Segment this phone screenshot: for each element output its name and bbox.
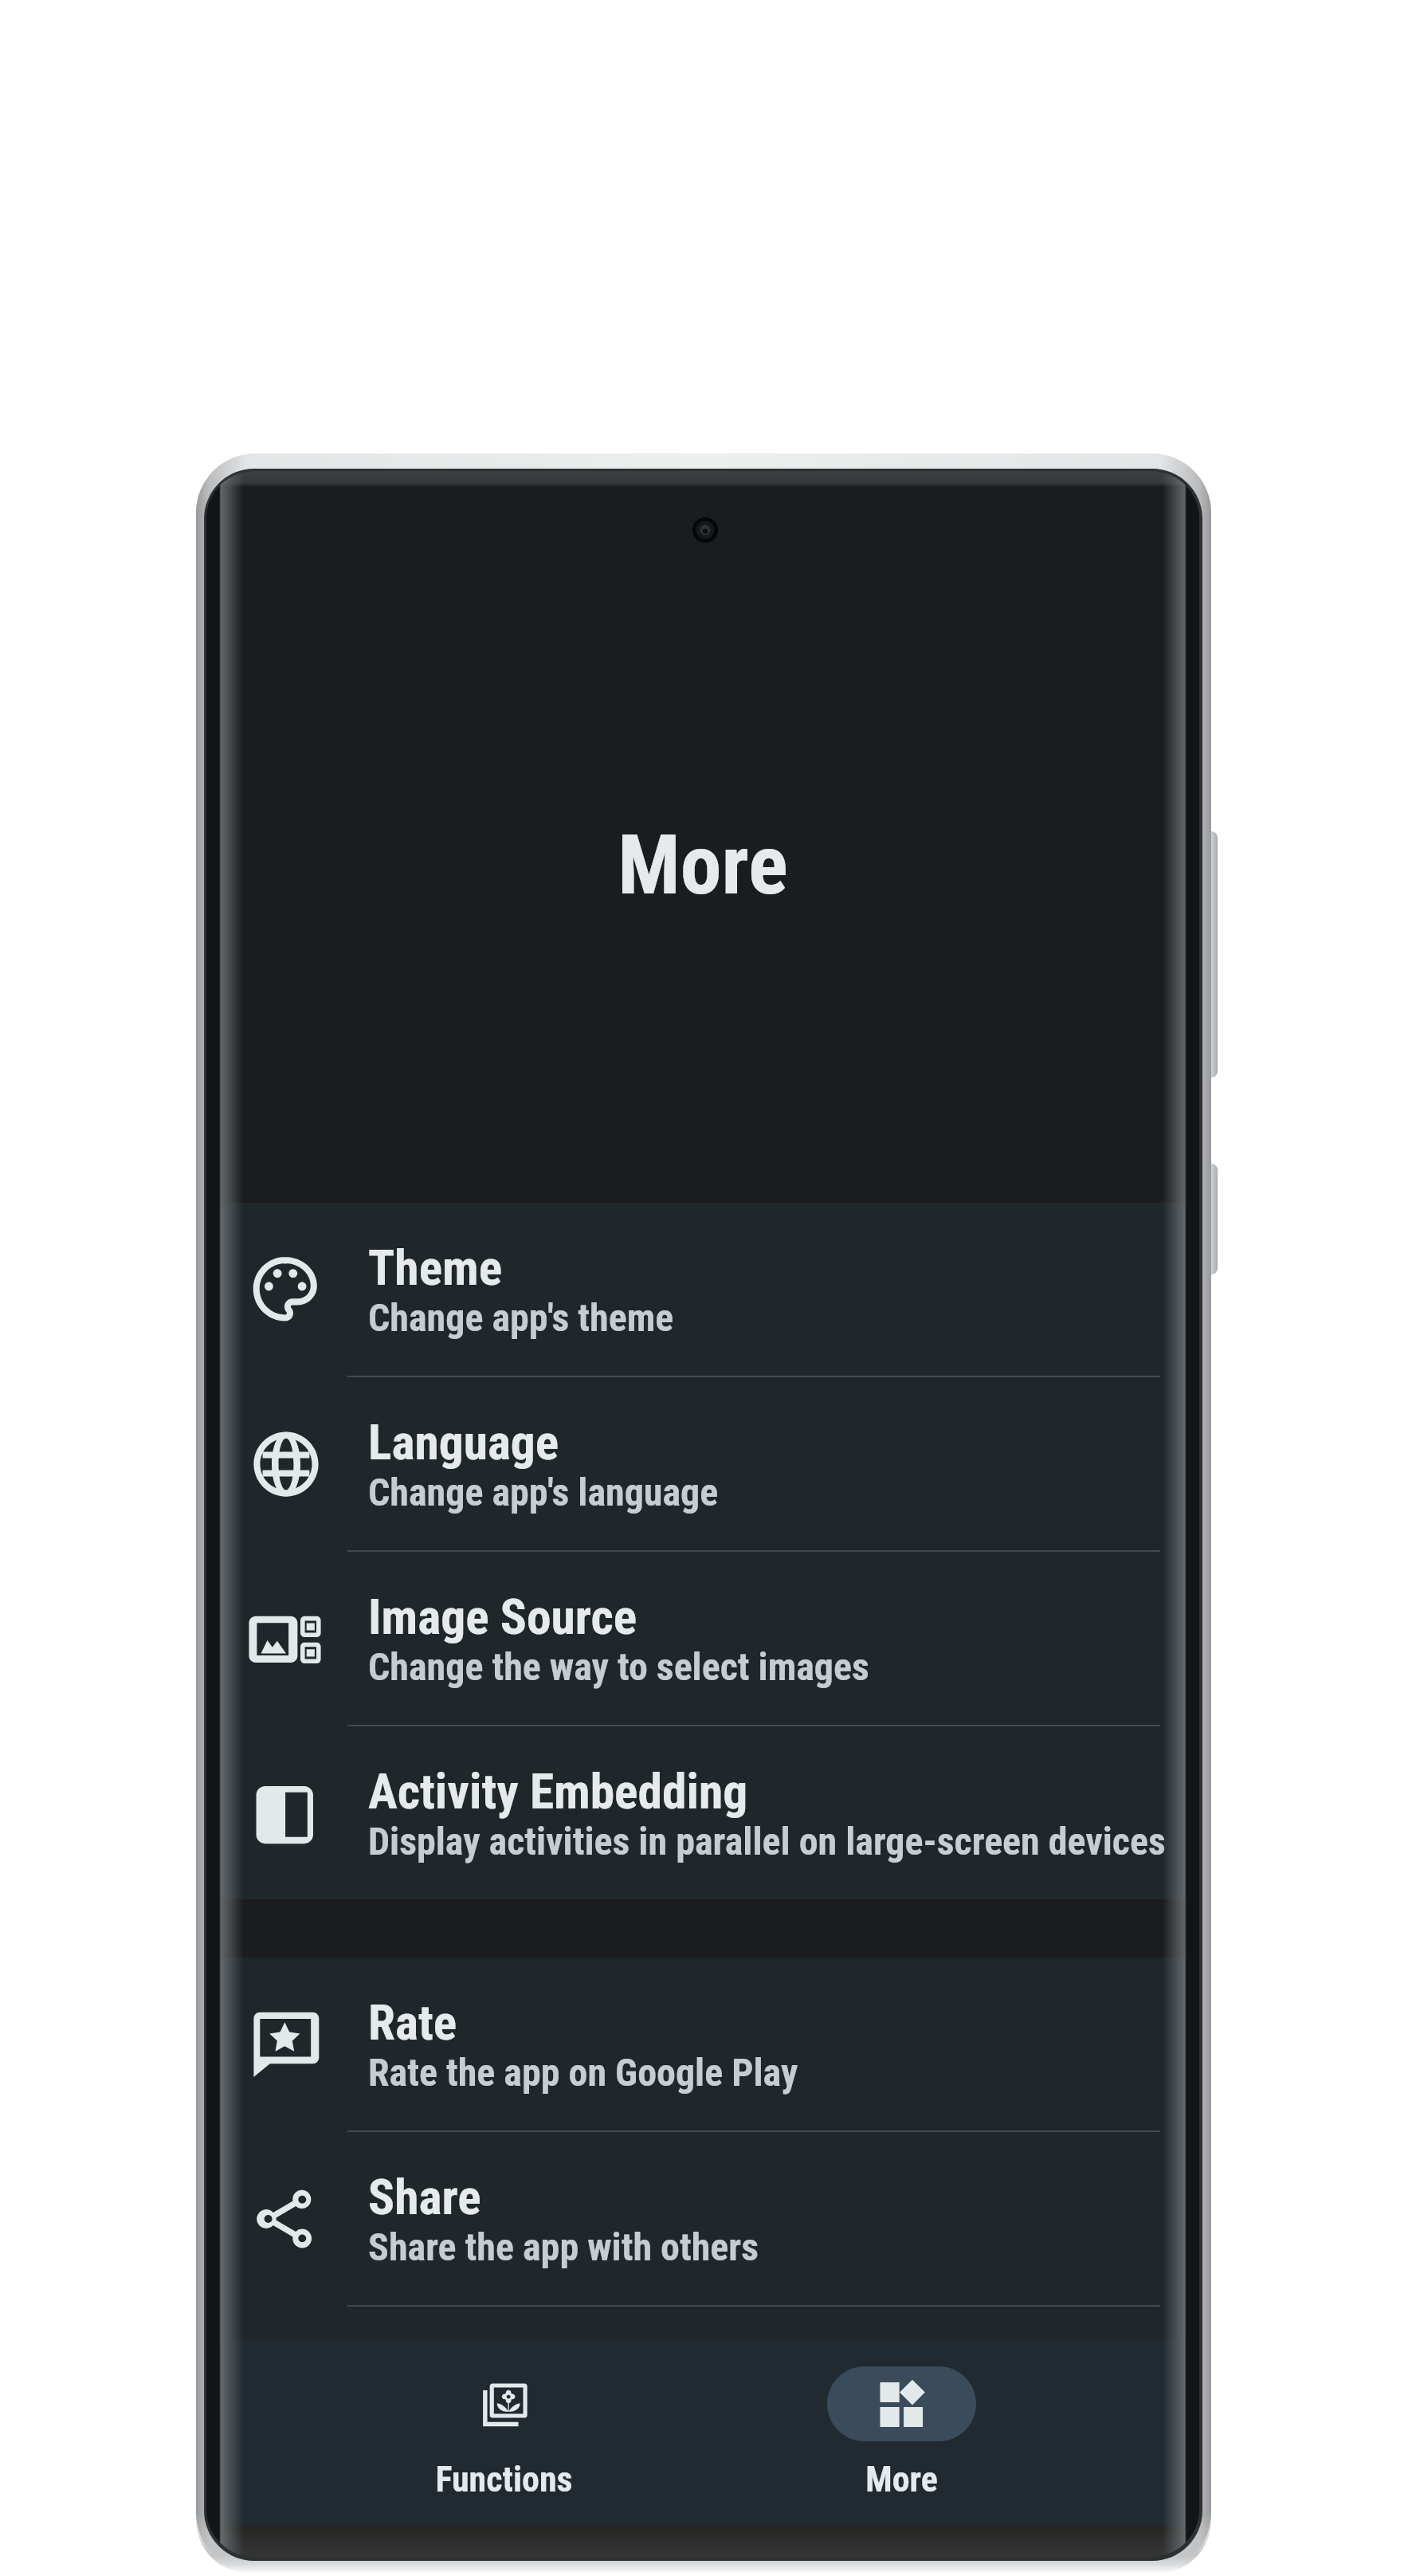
button[interactable]: Activity Embedding xyxy=(206,1726,1199,1901)
button[interactable]: Language xyxy=(206,1377,1199,1552)
staticText: Share xyxy=(368,2169,481,2226)
staticText: Theme xyxy=(368,1239,503,1297)
staticText: Change app's theme xyxy=(368,1295,674,1340)
staticText: Share the app with others xyxy=(368,2225,759,2269)
staticText: Display activities in parallel on large-… xyxy=(368,1819,1166,1863)
button[interactable]: More xyxy=(774,2366,1029,2500)
button[interactable]: Image Source xyxy=(206,1552,1199,1726)
button[interactable]: Theme xyxy=(206,1203,1199,1377)
staticText: More xyxy=(865,2459,938,2500)
button[interactable]: Functions xyxy=(376,2366,631,2500)
staticText: More xyxy=(618,817,788,914)
staticText: Change the way to select images xyxy=(368,1644,869,1689)
staticText: Rate the app on Google Play xyxy=(368,2050,798,2095)
button[interactable]: Share xyxy=(206,2132,1199,2307)
button[interactable]: Rate xyxy=(206,1958,1199,2132)
staticText: Change app's language xyxy=(368,1470,719,1514)
staticText: Language xyxy=(368,1414,559,1471)
staticText: Functions xyxy=(435,2459,573,2500)
staticText: Rate xyxy=(368,1994,457,2052)
staticText: Image Source xyxy=(368,1588,637,1646)
staticText: Activity Embedding xyxy=(368,1763,748,1820)
